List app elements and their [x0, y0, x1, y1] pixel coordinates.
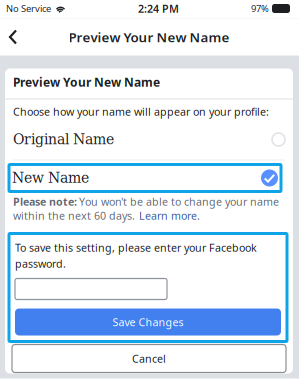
- staticText: New Name: [12, 170, 89, 186]
- staticText: Save Changes: [112, 315, 183, 329]
- staticText: 2:24 PM: [138, 1, 179, 16]
- staticText: You won't be able to change your name: [79, 194, 279, 209]
- button[interactable]: Learn more.: [139, 208, 203, 222]
- staticText: To save this setting, please enter your …: [15, 240, 257, 255]
- staticText: Preview Your New Name: [13, 74, 160, 90]
- staticText: Original Name: [13, 131, 114, 148]
- button[interactable]: Save Changes: [15, 308, 281, 335]
- staticText: 97%: [251, 2, 269, 15]
- staticText: Cancel: [132, 351, 166, 366]
- staticText: Choose how your name will appear on your…: [13, 104, 269, 119]
- staticText: within the next 60 days.: [13, 208, 135, 223]
- staticText: password.: [15, 256, 66, 271]
- button[interactable]: Back: [0, 18, 28, 55]
- staticText: Learn more.: [139, 208, 200, 223]
- staticText: Preview Your New Name: [68, 28, 229, 46]
- staticText: No Service: [6, 2, 51, 15]
- button[interactable]: Cancel: [12, 344, 286, 372]
- staticText: Please note:: [13, 194, 77, 209]
